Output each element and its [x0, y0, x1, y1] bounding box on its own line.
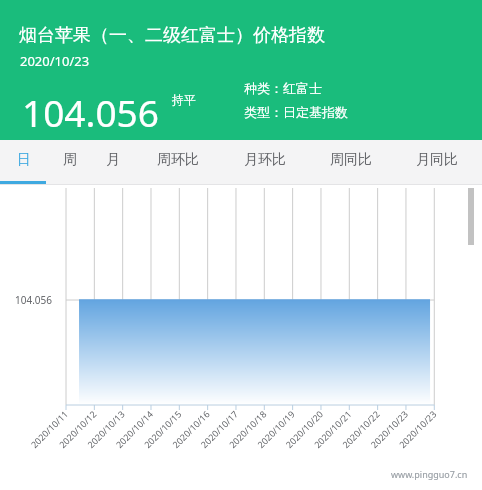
- staticText: 类型：日定基指数: [244, 104, 348, 120]
- staticText: 周环比: [157, 151, 199, 169]
- button[interactable]: 周环比: [135, 140, 221, 185]
- button[interactable]: 月同比: [394, 140, 480, 185]
- staticText: 2020/10/23: [20, 52, 90, 70]
- staticText: 月: [106, 151, 120, 169]
- button[interactable]: 周: [47, 140, 93, 185]
- button[interactable]: 月环比: [222, 140, 308, 185]
- staticText: 104.056: [22, 87, 159, 137]
- button[interactable]: 月: [91, 140, 135, 185]
- staticText: 月环比: [244, 151, 286, 169]
- staticText: 日: [17, 151, 31, 169]
- staticText: 持平: [172, 92, 196, 107]
- button[interactable]: 周同比: [308, 140, 394, 185]
- staticText: 周同比: [330, 151, 372, 169]
- button[interactable]: 日: [1, 140, 47, 185]
- staticText: 烟台苹果（一、二级红富士）价格指数: [19, 24, 325, 47]
- staticText: 种类：红富士: [244, 80, 322, 96]
- staticText: 周: [63, 151, 77, 169]
- staticText: 月同比: [416, 151, 458, 169]
